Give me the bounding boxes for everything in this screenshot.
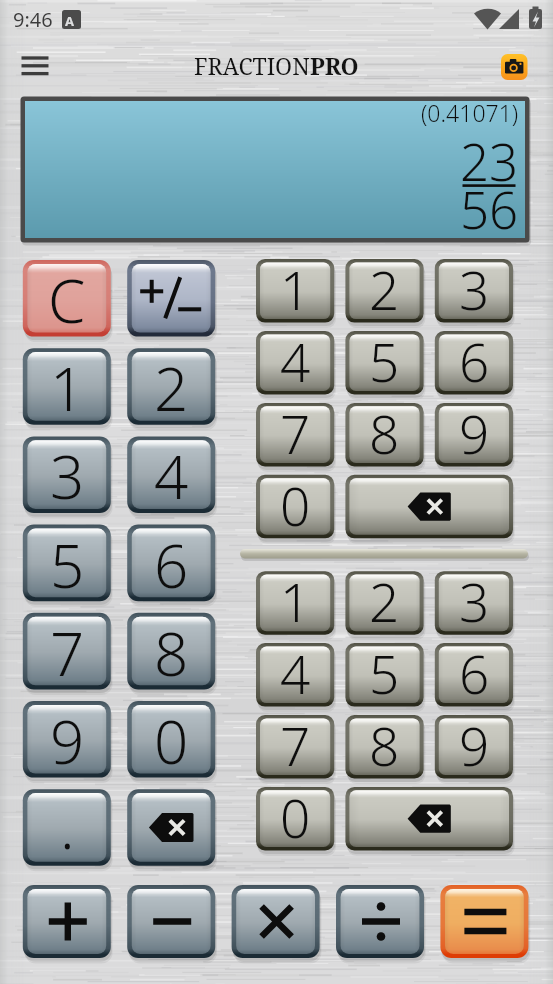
staticText: 4 (280, 325, 311, 389)
button[interactable]: 4 (256, 643, 334, 707)
button[interactable]: Plus (23, 885, 111, 958)
button[interactable]: . (23, 789, 111, 866)
button[interactable]: 7 (256, 715, 334, 779)
staticText: 7 (280, 397, 311, 461)
staticText: 3 (50, 435, 85, 512)
button[interactable]: 5 (345, 643, 423, 707)
staticText: PRO (310, 50, 359, 81)
staticText: 2 (369, 253, 400, 317)
button[interactable]: Minus (127, 885, 215, 958)
button[interactable]: Camera (500, 53, 529, 82)
button[interactable]: 5 (23, 525, 111, 602)
button[interactable]: 1 (256, 259, 334, 323)
button[interactable]: 3 (23, 436, 111, 513)
staticText: 0 (154, 700, 189, 777)
staticText: 6 (459, 637, 490, 701)
button[interactable]: 7 (256, 403, 334, 467)
button[interactable]: 7 (23, 613, 111, 690)
staticText: 7 (280, 709, 311, 773)
button[interactable]: 8 (345, 403, 423, 467)
button[interactable]: 8 (127, 613, 215, 690)
button[interactable]: 1 (256, 571, 334, 635)
button[interactable]: C (23, 260, 111, 337)
staticText: 5 (369, 637, 400, 701)
staticText: . (60, 785, 75, 862)
staticText: 8 (154, 612, 189, 689)
button[interactable]: 1 (23, 348, 111, 425)
staticText: 9 (459, 397, 490, 461)
staticText: 4 (154, 435, 189, 512)
staticText: 9:46 (13, 6, 53, 33)
button[interactable]: Multiply (232, 885, 320, 958)
button[interactable]: 5 (345, 331, 423, 395)
button[interactable]: Menu (13, 47, 57, 89)
button[interactable]: 4 (256, 331, 334, 395)
button[interactable]: 0 (256, 787, 334, 851)
staticText: 1 (280, 565, 311, 629)
staticText: 3 (459, 253, 490, 317)
button[interactable]: Equals (440, 885, 528, 958)
button[interactable]: 3 (435, 571, 513, 635)
button[interactable]: 6 (435, 643, 513, 707)
staticText: 6 (154, 524, 189, 601)
button[interactable]: 6 (127, 525, 215, 602)
staticText: 1 (280, 253, 311, 317)
staticText: C (48, 259, 86, 336)
staticText: 6 (459, 325, 490, 389)
staticText: 9 (50, 700, 85, 777)
button[interactable]: 2 (345, 259, 423, 323)
staticText: 8 (369, 709, 400, 773)
button[interactable]: Backspace (345, 475, 513, 539)
button[interactable]: 9 (435, 403, 513, 467)
button[interactable]: 6 (435, 331, 513, 395)
staticText: (0.41071) (421, 97, 519, 128)
staticText: 4 (280, 637, 311, 701)
button[interactable]: 0 (127, 701, 215, 778)
button[interactable]: Divide (336, 885, 424, 958)
staticText: 23 (460, 126, 519, 195)
button[interactable]: Backspace (345, 787, 513, 851)
button[interactable]: Plus minus sign (127, 260, 215, 337)
staticText: 3 (459, 565, 490, 629)
staticText: FRACTION (194, 50, 310, 81)
staticText: 0 (280, 469, 311, 533)
button[interactable]: Backspace (127, 789, 215, 866)
button[interactable]: 9 (23, 701, 111, 778)
staticText: 5 (369, 325, 400, 389)
button[interactable]: 8 (345, 715, 423, 779)
button[interactable]: 0 (256, 475, 334, 539)
staticText: 56 (460, 174, 519, 243)
button[interactable]: 2 (345, 571, 423, 635)
staticText: A (65, 12, 74, 30)
button[interactable]: 2 (127, 348, 215, 425)
staticText: 8 (369, 397, 400, 461)
staticText: 2 (154, 347, 189, 424)
button[interactable]: 9 (435, 715, 513, 779)
button[interactable]: 4 (127, 436, 215, 513)
staticText: 2 (369, 565, 400, 629)
staticText: 7 (50, 612, 85, 689)
staticText: 5 (50, 524, 85, 601)
staticText: 1 (50, 347, 85, 424)
staticText: 0 (280, 781, 311, 845)
staticText: 9 (459, 709, 490, 773)
button[interactable]: 3 (435, 259, 513, 323)
